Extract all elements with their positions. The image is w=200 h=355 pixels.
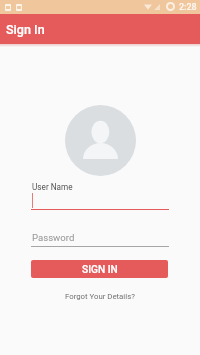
button[interactable]: Forgot Your Details? [0,289,200,303]
button[interactable]: SIGN IN [31,260,168,278]
staticText: Forgot Your Details? [65,292,135,301]
button[interactable]: Password [31,229,169,247]
button[interactable]: User Name [31,178,169,211]
staticText: Password [32,232,75,243]
staticText: User Name [32,182,73,192]
staticText: 2:28 [179,2,197,13]
staticText: Sign In [6,22,45,37]
staticText: SIGN IN [82,264,118,276]
